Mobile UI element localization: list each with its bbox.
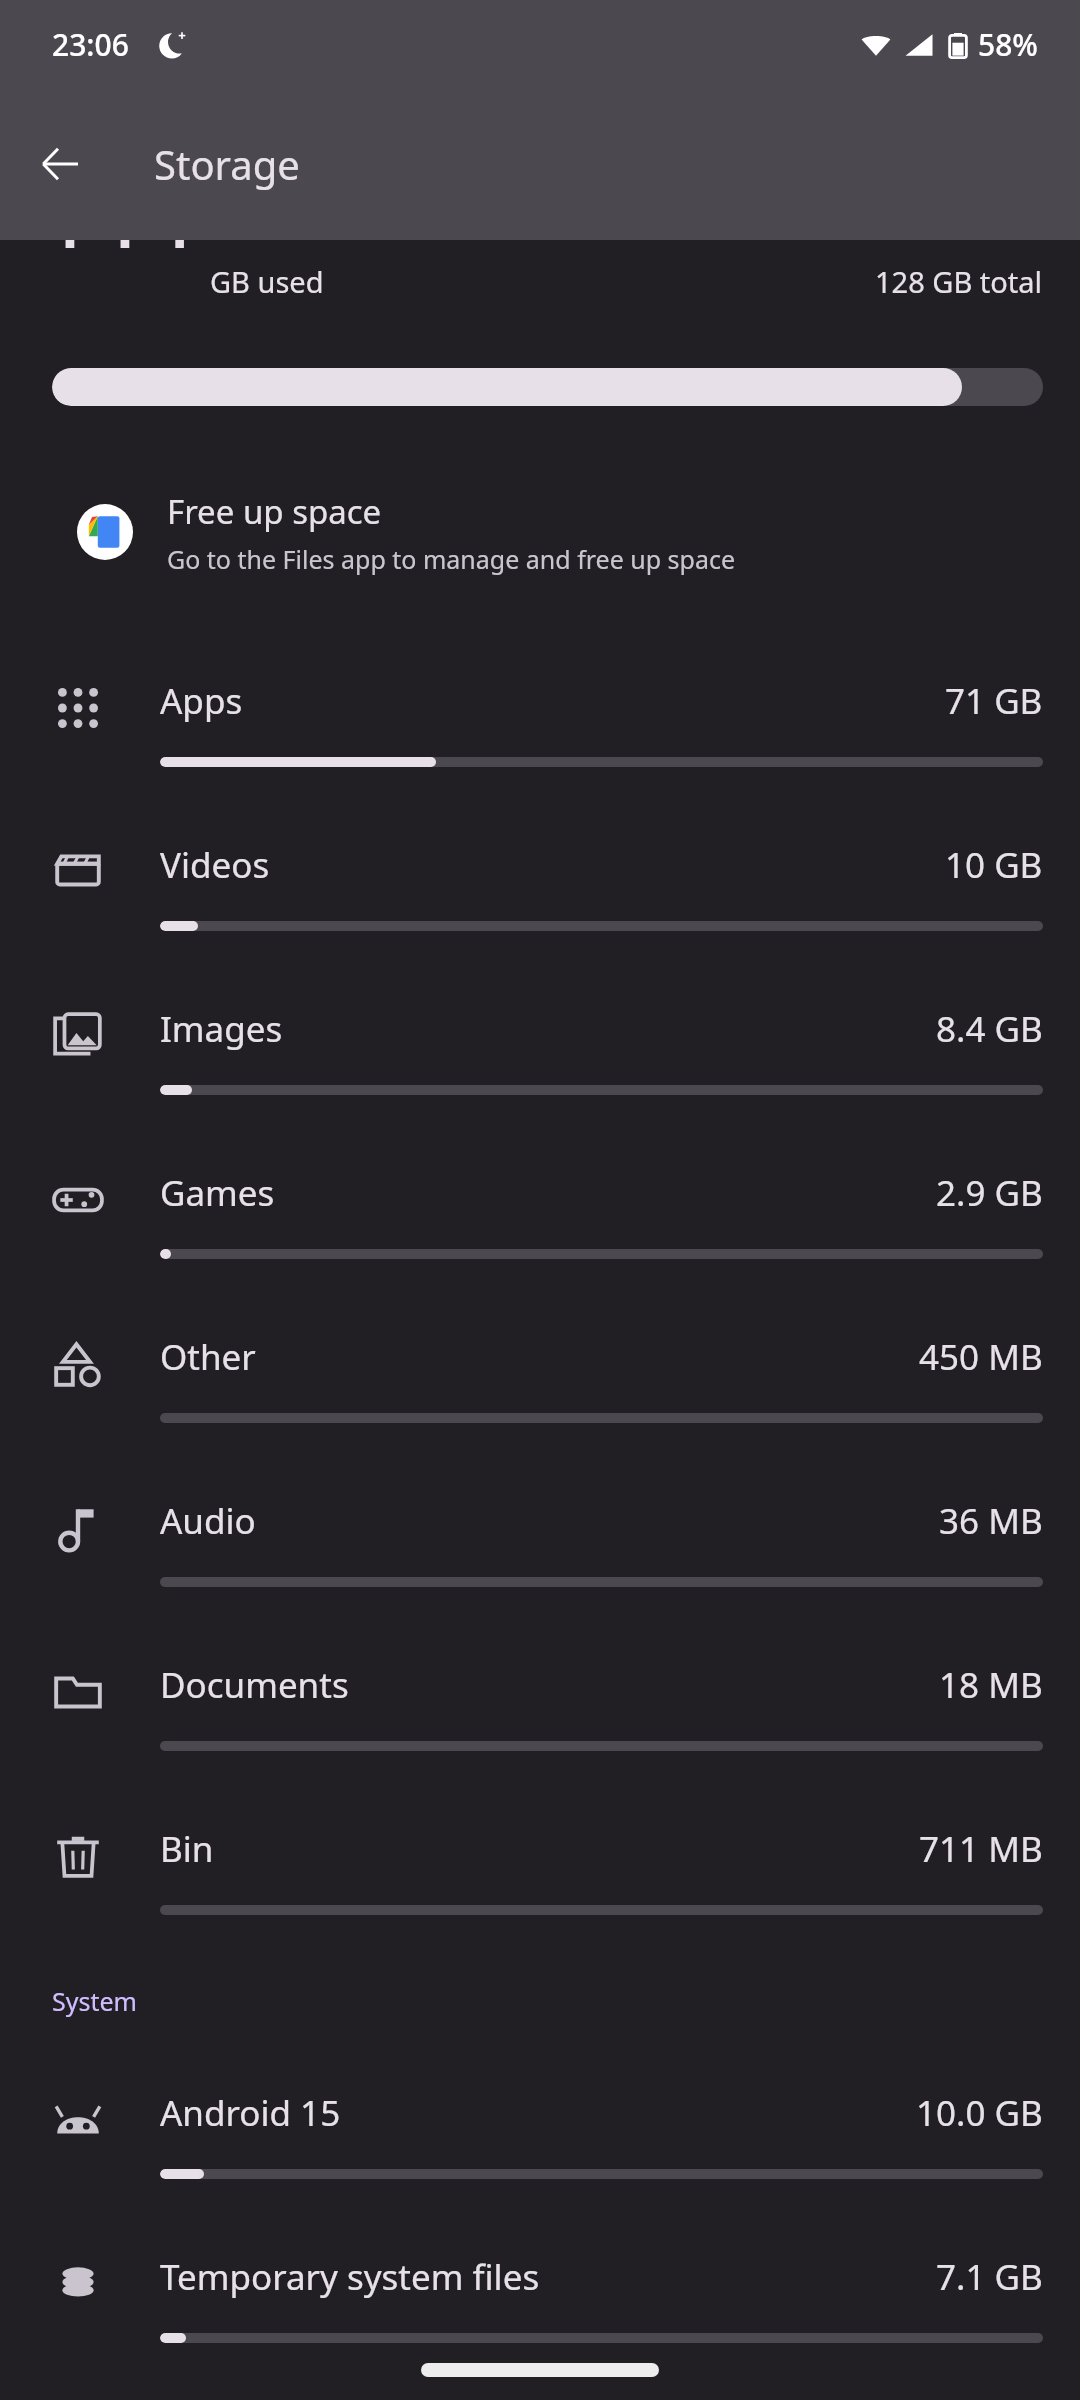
- button[interactable]: Other: [0, 1296, 1080, 1460]
- staticText: 2.9 GB: [936, 1169, 1043, 1217]
- staticText: 18 MB: [939, 1661, 1043, 1709]
- staticText: 450 MB: [919, 1333, 1043, 1381]
- staticText: Go to the Files app to manage and free u…: [167, 542, 736, 576]
- staticText: Apps: [160, 677, 243, 725]
- staticText: Other: [160, 1333, 256, 1381]
- button[interactable]: Temporary system files: [0, 2216, 1080, 2380]
- button[interactable]: Android 15: [0, 2052, 1080, 2216]
- staticText: 111: [40, 178, 205, 248]
- staticText: Games: [160, 1169, 275, 1217]
- staticText: Bin: [160, 1825, 214, 1873]
- button[interactable]: Documents: [0, 1624, 1080, 1788]
- button[interactable]: Games: [0, 1132, 1080, 1296]
- staticText: 10.0 GB: [916, 2089, 1043, 2137]
- staticText: 7.1 GB: [936, 2253, 1043, 2301]
- staticText: 36 MB: [939, 1497, 1043, 1545]
- staticText: Videos: [160, 841, 270, 889]
- staticText: GB used: [210, 262, 324, 301]
- staticText: 10 GB: [945, 841, 1043, 889]
- staticText: Images: [160, 1005, 283, 1053]
- staticText: 23:06: [52, 24, 129, 65]
- staticText: 8.4 GB: [936, 1005, 1043, 1053]
- staticText: Storage: [154, 137, 300, 191]
- button[interactable]: Audio: [0, 1460, 1080, 1624]
- button[interactable]: Apps: [0, 640, 1080, 804]
- staticText: Audio: [160, 1497, 256, 1545]
- staticText: System: [52, 1984, 137, 2018]
- staticText: Temporary system files: [160, 2253, 540, 2301]
- button[interactable]: Images: [0, 968, 1080, 1132]
- staticText: Free up space: [167, 489, 382, 534]
- button[interactable]: Free up space: [0, 478, 1080, 586]
- button[interactable]: Videos: [0, 804, 1080, 968]
- staticText: 711 MB: [919, 1825, 1043, 1873]
- button[interactable]: Bin: [0, 1788, 1080, 1952]
- staticText: 58%: [978, 24, 1038, 65]
- staticText: 128 GB total: [875, 262, 1043, 301]
- button[interactable]: Back: [22, 126, 98, 202]
- staticText: Android 15: [160, 2089, 341, 2137]
- staticText: 71 GB: [945, 677, 1043, 725]
- staticText: Documents: [160, 1661, 349, 1709]
